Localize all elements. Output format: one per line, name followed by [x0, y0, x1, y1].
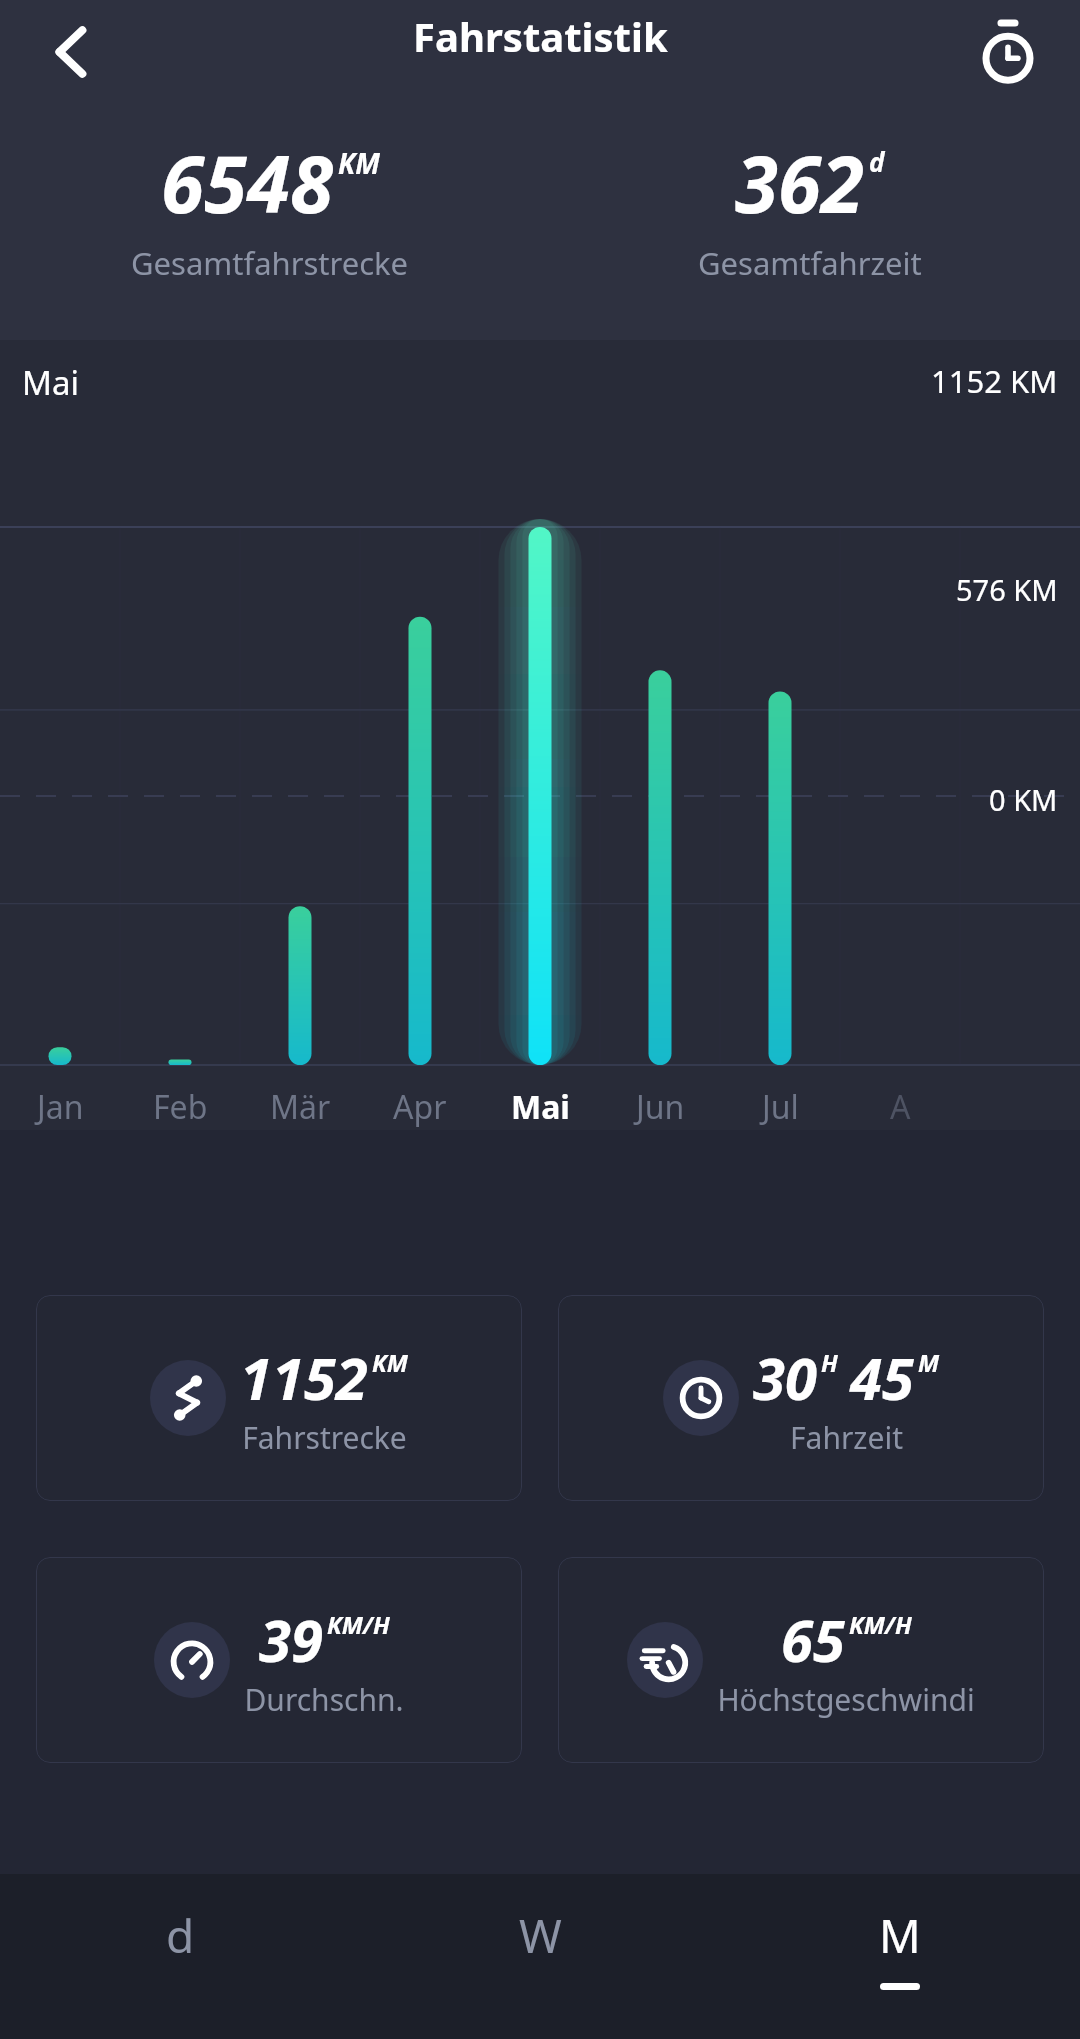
button[interactable]: 39: [36, 1557, 522, 1763]
staticText: 39: [259, 1600, 323, 1679]
button[interactable]: Jun: [600, 1085, 720, 1129]
staticText: KM/H: [327, 1608, 390, 1641]
button[interactable]: 1152: [36, 1295, 522, 1501]
staticText: W: [519, 1904, 562, 1967]
staticText: 1152 KM: [931, 360, 1058, 402]
staticText: Mai: [22, 360, 79, 405]
staticText: H: [821, 1346, 838, 1379]
staticText: Fahrstatistik: [413, 9, 668, 63]
staticText: 45: [850, 1338, 914, 1417]
staticText: 30: [753, 1338, 817, 1417]
staticText: KM/H: [849, 1608, 912, 1641]
staticText: Durchschn.: [244, 1679, 404, 1720]
staticText: Fahrstrecke: [242, 1417, 407, 1458]
button[interactable]: 30: [558, 1295, 1044, 1501]
staticText: d: [166, 1904, 195, 1967]
staticText: 576 KM: [956, 570, 1058, 609]
button[interactable]: Back: [26, 6, 118, 98]
staticText: KM: [372, 1346, 408, 1379]
staticText: 6548: [161, 130, 333, 236]
staticText: 362: [735, 130, 864, 236]
button[interactable]: Mär: [240, 1085, 360, 1129]
button[interactable]: Apr: [360, 1085, 480, 1129]
button[interactable]: Jul: [720, 1085, 840, 1129]
staticText: Jul: [762, 1085, 799, 1129]
staticText: 1152: [240, 1338, 368, 1417]
staticText: A: [890, 1085, 911, 1129]
staticText: KM: [338, 144, 380, 182]
staticText: Apr: [393, 1085, 447, 1129]
button[interactable]: d: [0, 1874, 360, 2039]
staticText: 0 KM: [989, 780, 1058, 819]
button[interactable]: Feb: [120, 1085, 240, 1129]
staticText: Jun: [636, 1085, 685, 1129]
staticText: Gesamtfahrzeit: [698, 242, 922, 284]
staticText: 65: [781, 1600, 845, 1679]
button[interactable]: 65: [558, 1557, 1044, 1763]
staticText: Feb: [153, 1085, 208, 1129]
staticText: Mai: [511, 1085, 570, 1129]
button[interactable]: Jan: [0, 1085, 120, 1129]
staticText: Jan: [37, 1085, 84, 1129]
staticText: M: [879, 1904, 921, 1967]
button[interactable]: Stopwatch: [960, 4, 1056, 100]
button[interactable]: W: [360, 1874, 720, 2039]
staticText: Fahrzeit: [790, 1417, 903, 1458]
staticText: Mär: [270, 1085, 331, 1129]
staticText: M: [918, 1346, 940, 1379]
staticText: Gesamtfahrstrecke: [131, 242, 409, 284]
staticText: d: [869, 144, 885, 179]
button[interactable]: M: [720, 1874, 1080, 2039]
button[interactable]: Mai: [480, 1085, 600, 1129]
staticText: Höchstgeschwindi: [717, 1679, 975, 1720]
